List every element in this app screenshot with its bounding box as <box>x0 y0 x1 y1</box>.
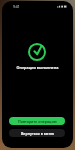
staticText: Операция выполнена <box>2 65 73 70</box>
button[interactable]: Вернуться в меню <box>9 129 65 137</box>
button[interactable]: Повторить операцию <box>9 117 65 125</box>
staticText: Вернуться в меню <box>21 131 54 136</box>
staticText: 9:41 <box>13 4 20 9</box>
other: Status icons <box>57 5 67 8</box>
staticText: Повторить операцию <box>18 119 57 124</box>
